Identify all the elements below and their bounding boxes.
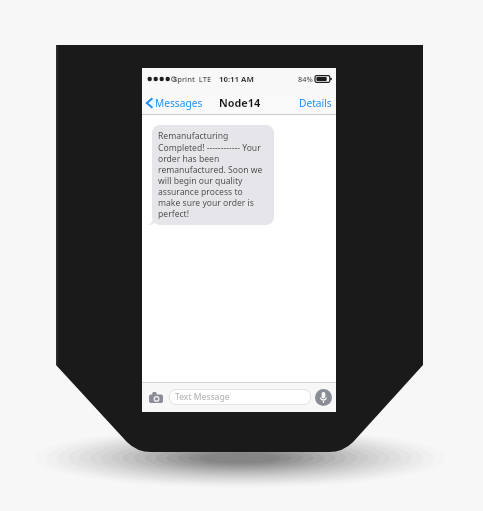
- button[interactable]: Record audio message: [315, 389, 332, 406]
- staticText: Sprint LTE: [173, 74, 212, 84]
- button[interactable]: Remanufacturing Completed! ------------ …: [152, 125, 274, 225]
- staticText: Messages: [155, 96, 203, 110]
- staticText: Node14: [219, 95, 261, 110]
- staticText: 10:11 AM: [219, 74, 254, 85]
- button[interactable]: Details: [295, 93, 336, 113]
- staticText: Remanufacturing Completed! ------------ …: [158, 130, 267, 219]
- button[interactable]: Messages: [144, 93, 205, 113]
- staticText: 84%: [298, 74, 313, 84]
- staticText: Text Message: [175, 391, 230, 403]
- button[interactable]: Camera: [146, 389, 166, 406]
- staticText: Details: [299, 96, 332, 110]
- button[interactable]: Text Message: [169, 389, 311, 405]
